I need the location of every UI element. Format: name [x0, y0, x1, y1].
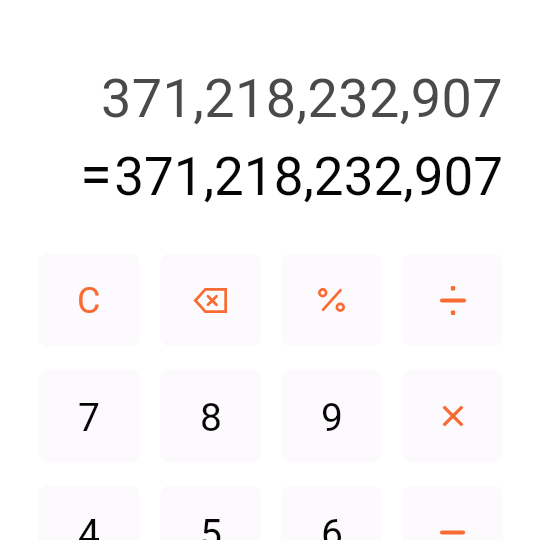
button[interactable]: Backspace [160, 253, 261, 347]
button[interactable]: Percent [281, 253, 382, 347]
staticText: 371,218,232,907 [100, 67, 503, 130]
button[interactable]: Clear [38, 253, 140, 347]
staticText: 4 [78, 511, 100, 540]
button[interactable]: 8 [160, 369, 261, 463]
staticText: C [77, 280, 101, 322]
staticText: 8 [200, 395, 222, 441]
staticText: 6 [321, 511, 343, 540]
staticText: 7 [78, 395, 100, 441]
button[interactable]: 4 [38, 485, 140, 540]
staticText: 9 [321, 395, 343, 441]
button[interactable]: 6 [281, 485, 382, 540]
staticText: = [80, 140, 112, 208]
button[interactable]: 9 [281, 369, 382, 463]
staticText: 5 [200, 511, 222, 540]
button[interactable]: Multiply [402, 369, 503, 463]
button[interactable]: Divide [402, 253, 503, 347]
button[interactable]: Minus [402, 485, 503, 540]
staticText: 371,218,232,907 [114, 146, 503, 208]
button[interactable]: 7 [38, 369, 140, 463]
button[interactable]: 5 [160, 485, 261, 540]
